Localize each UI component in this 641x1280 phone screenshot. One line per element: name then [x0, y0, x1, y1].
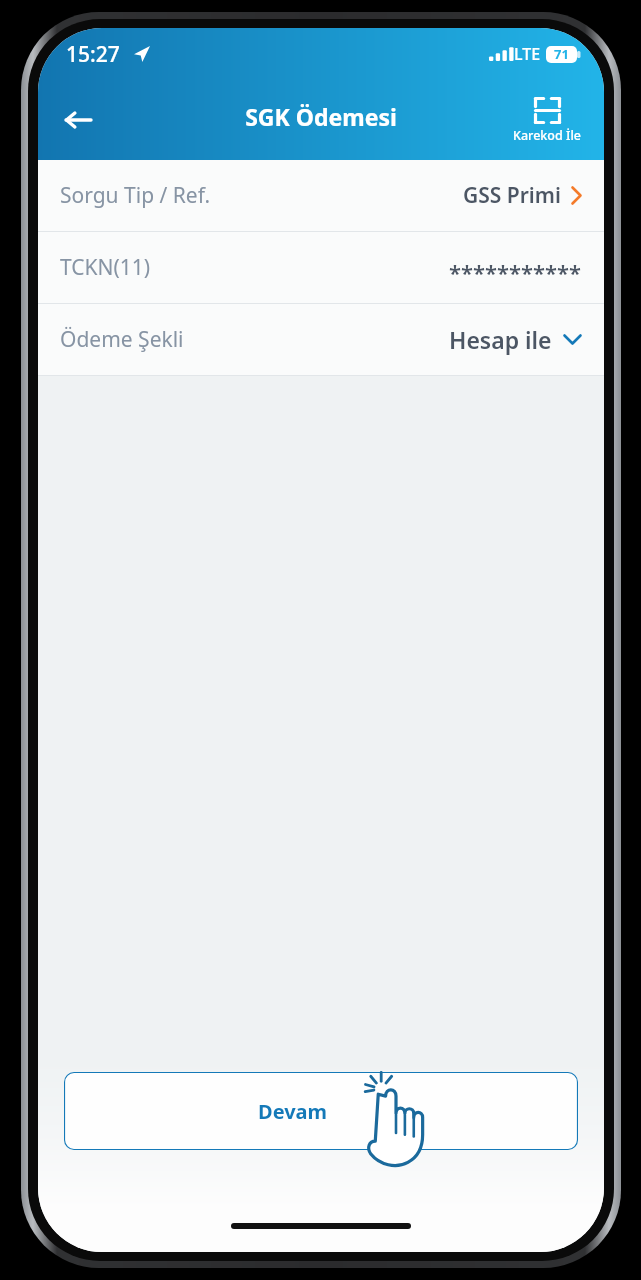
staticText: 15:27 [66, 40, 120, 69]
staticText: Sorgu Tip / Ref. [60, 181, 211, 210]
staticText: Devam [258, 1098, 328, 1125]
staticText: GSS Primi [463, 181, 561, 210]
staticText: Hesap ile [449, 324, 552, 355]
staticText: *********** [449, 257, 582, 287]
staticText: Ödeme Şekli [60, 325, 184, 354]
button[interactable]: Devam [64, 1072, 578, 1150]
button[interactable]: Sorgu Tip / Ref. [38, 160, 604, 231]
staticText: SGK Ödemesi [245, 101, 397, 132]
button[interactable]: Karekod İle [504, 97, 590, 144]
button[interactable]: TCKN(11) [38, 232, 604, 303]
staticText: LTE [514, 43, 541, 65]
staticText: 71 [554, 45, 569, 63]
staticText: Karekod İle [513, 127, 581, 144]
button[interactable]: Geri [52, 94, 104, 146]
staticText: TCKN(11) [60, 253, 151, 282]
button[interactable]: Ödeme Şekli [38, 304, 604, 375]
